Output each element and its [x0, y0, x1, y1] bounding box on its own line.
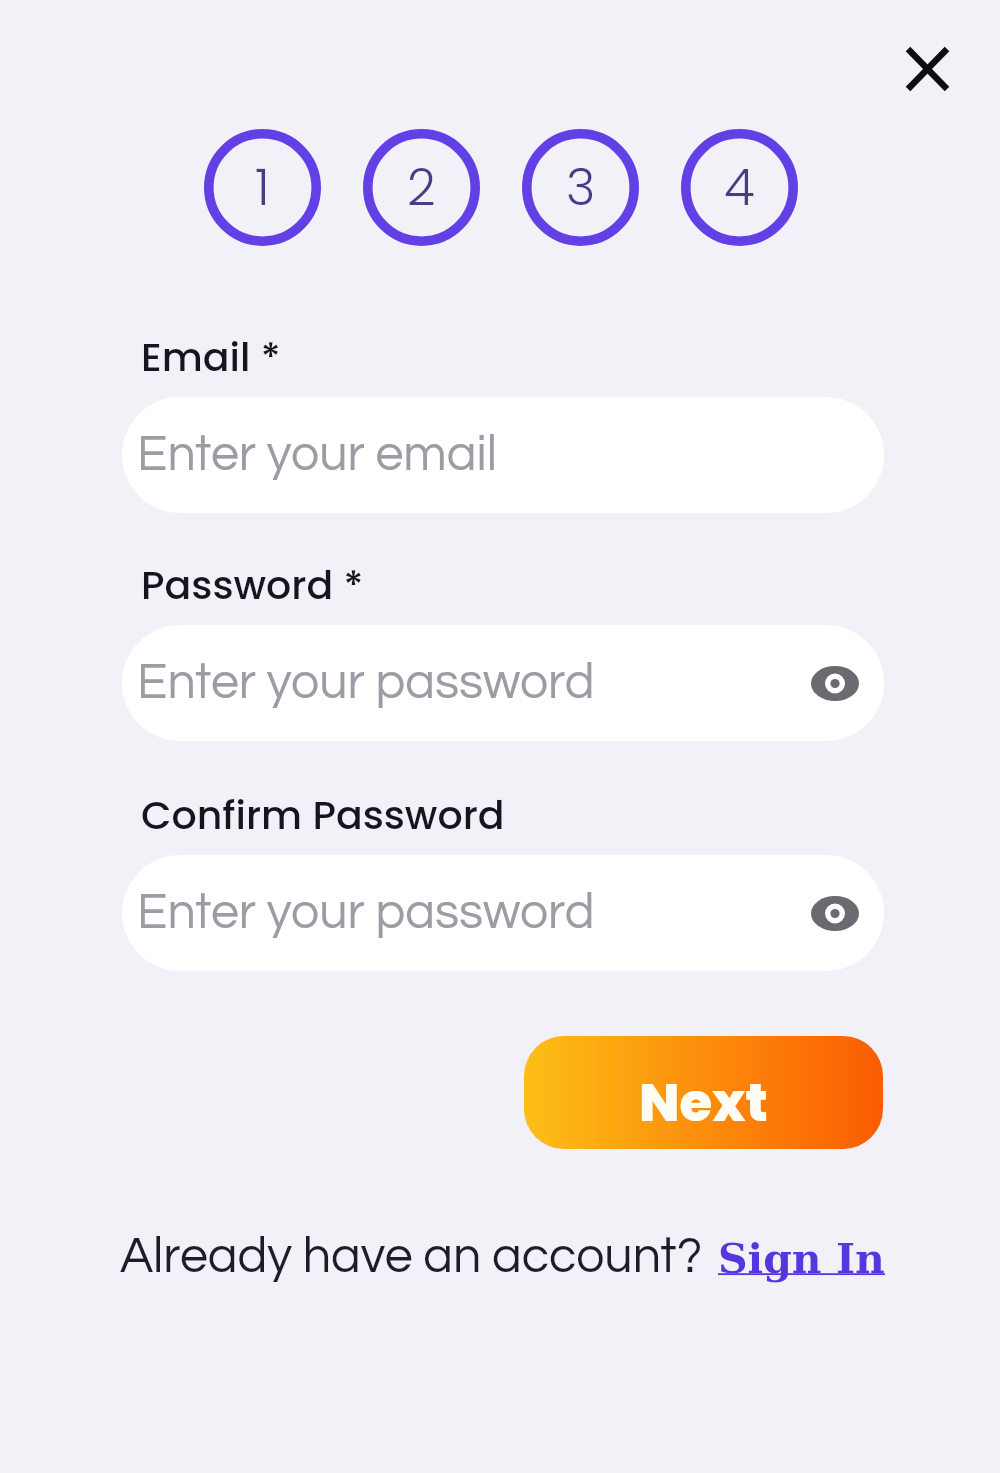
staticText: Password *: [141, 558, 364, 613]
staticText: Enter your password: [137, 657, 595, 709]
staticText: Sign In: [718, 1235, 885, 1283]
button[interactable]: Sign In: [718, 1235, 885, 1283]
staticText: Email *: [141, 330, 281, 385]
button[interactable]: Show password: [805, 883, 865, 943]
button[interactable]: Close: [887, 29, 967, 109]
button[interactable]: Enter your email: [122, 397, 884, 513]
button[interactable]: Show password: [805, 653, 865, 713]
staticText: Enter your email: [137, 429, 497, 481]
staticText: 4: [724, 153, 755, 223]
staticText: Already have an account?: [120, 1231, 703, 1283]
button[interactable]: Step 2: [363, 129, 480, 246]
button[interactable]: Step 4: [681, 129, 798, 246]
button[interactable]: Enter your password: [122, 855, 884, 971]
staticText: 1: [255, 153, 270, 223]
button[interactable]: Next: [524, 1036, 883, 1149]
staticText: Next: [639, 1065, 768, 1139]
staticText: Enter your password: [137, 887, 595, 939]
staticText: Confirm Password: [141, 788, 505, 843]
button[interactable]: Step 1: [204, 129, 321, 246]
button[interactable]: Enter your password: [122, 625, 884, 741]
button[interactable]: Step 3: [522, 129, 639, 246]
staticText: 3: [566, 153, 596, 223]
staticText: 2: [407, 153, 436, 223]
